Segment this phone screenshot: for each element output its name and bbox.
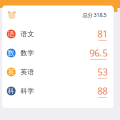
button[interactable]: 语 [2, 24, 113, 43]
staticText: 科 [8, 87, 15, 95]
button[interactable]: 科 [2, 81, 113, 100]
staticText: 总分 318.5 [82, 11, 106, 19]
staticText: 96.5 [89, 47, 107, 59]
staticText: 81 [97, 28, 107, 40]
staticText: 英语 [21, 68, 35, 76]
staticText: 语文 [21, 30, 35, 38]
button[interactable]: Profile [8, 11, 16, 19]
staticText: 科学 [21, 87, 35, 95]
staticText: 英 [8, 68, 15, 76]
button[interactable]: 数 [2, 43, 113, 62]
staticText: 88 [97, 85, 107, 97]
button[interactable]: 英 [2, 62, 113, 81]
staticText: 数 [8, 49, 15, 57]
staticText: 53 [97, 66, 107, 78]
staticText: 语 [8, 30, 15, 38]
staticText: 数学 [21, 49, 35, 57]
